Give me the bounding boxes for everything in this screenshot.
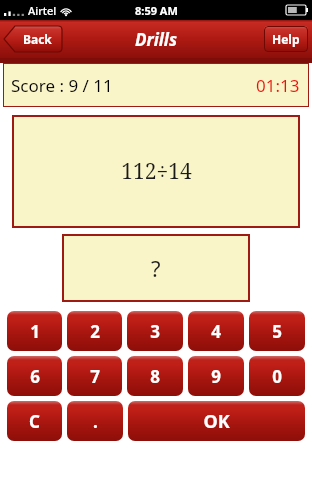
button[interactable]: 0 [249,356,305,396]
staticText: Help [272,31,300,47]
button[interactable]: Help [264,26,308,52]
button[interactable]: 1 [7,311,62,351]
button[interactable]: 5 [249,311,305,351]
staticText: 1 [30,320,40,343]
staticText: 0 [272,365,282,388]
staticText: C [29,410,40,433]
button[interactable]: 8 [127,356,183,396]
staticText: . [93,410,98,433]
staticText: 7 [90,365,100,388]
button[interactable]: 2 [67,311,122,351]
staticText: 4 [211,320,221,343]
button[interactable]: 3 [127,311,183,351]
button[interactable]: 7 [67,356,122,396]
staticText: 5 [272,320,282,343]
staticText: 8 [150,365,160,388]
staticText: ? [151,253,161,283]
staticText: Drills [135,28,178,51]
button[interactable]: 4 [188,311,244,351]
staticText: 2 [90,320,100,343]
button[interactable]: 6 [7,356,62,396]
staticText: Score : 9 / 11 [11,74,113,97]
button[interactable]: OK [128,401,305,441]
button[interactable]: Back [4,26,62,52]
button[interactable]: . [67,401,123,441]
staticText: Airtel [28,3,57,18]
button[interactable]: ? [62,234,250,302]
staticText: 3 [150,320,160,343]
staticText: Back [23,31,52,47]
button[interactable]: 9 [188,356,244,396]
staticText: 6 [30,365,40,388]
staticText: 112÷14 [121,157,192,186]
button[interactable]: C [7,401,62,441]
staticText: OK [203,409,230,434]
staticText: 9 [211,365,221,388]
staticText: 8:59 AM [135,3,178,18]
staticText: 01:13 [256,74,300,97]
